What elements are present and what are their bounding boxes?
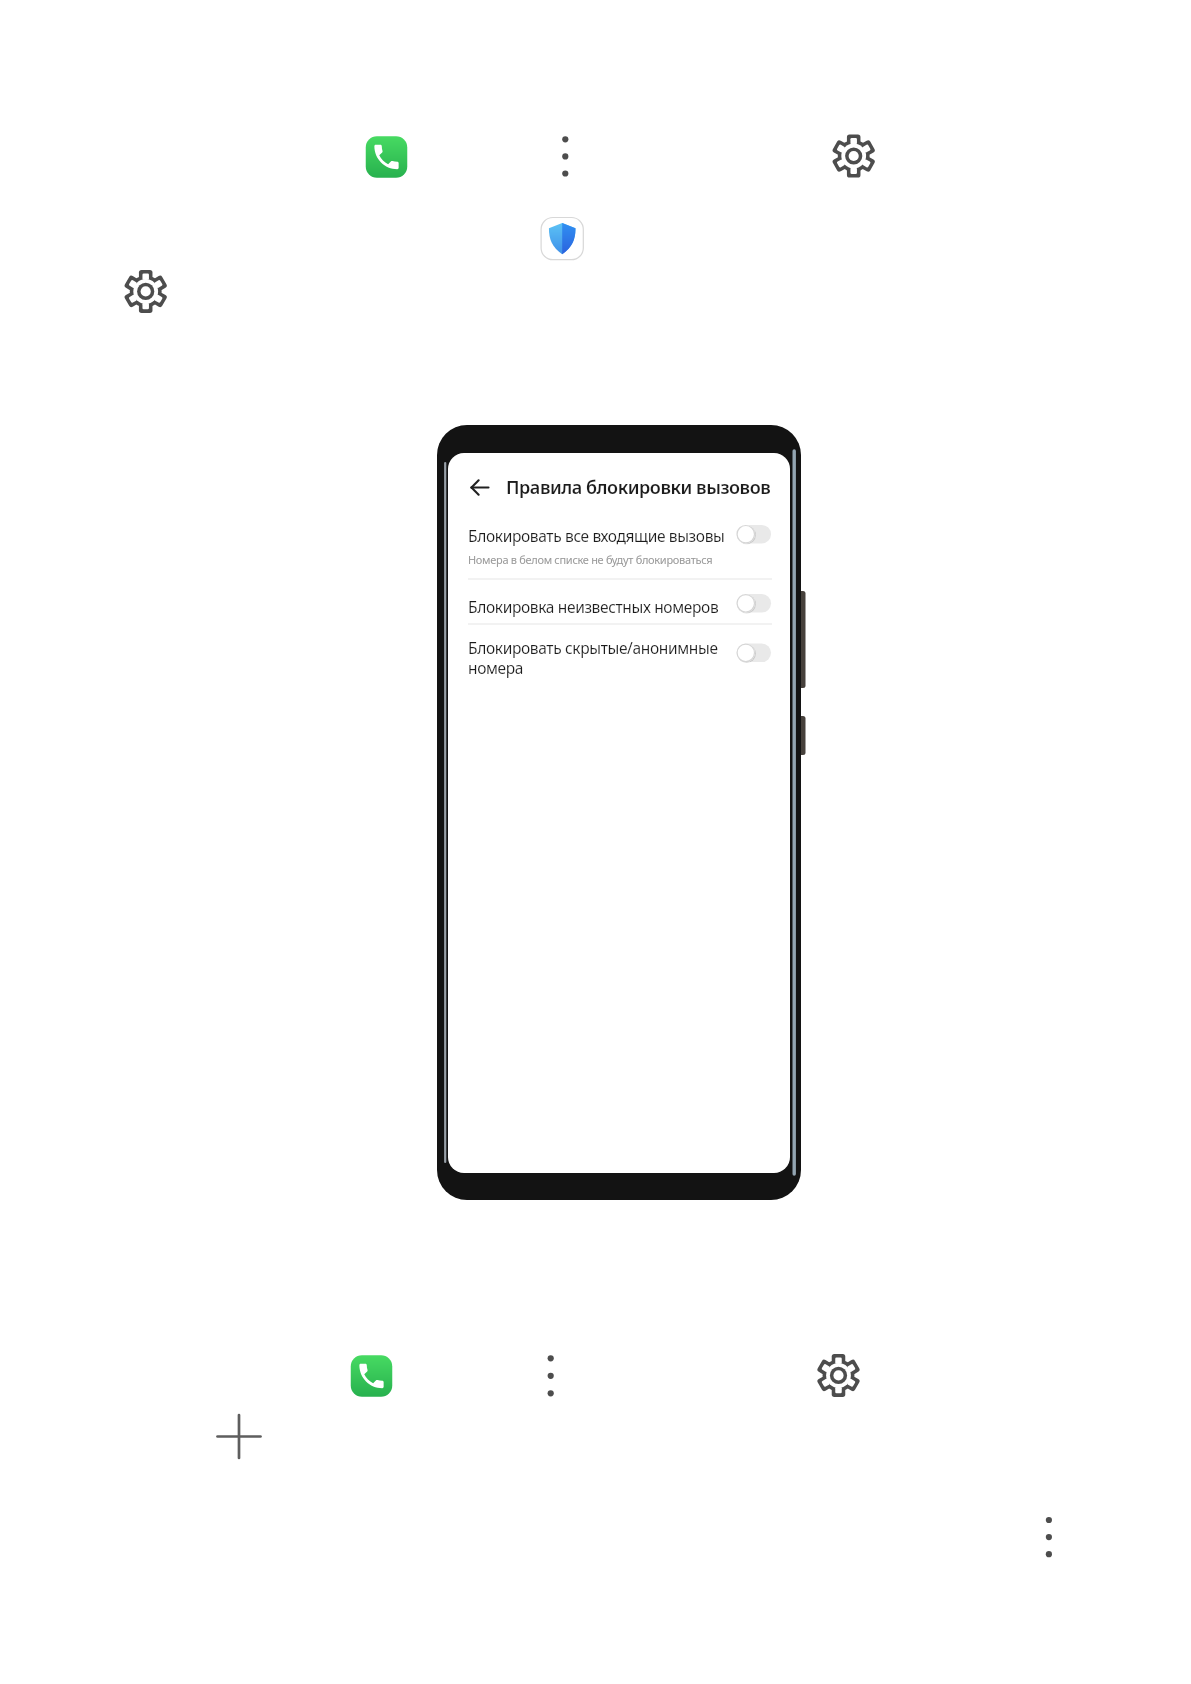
button[interactable] bbox=[460, 586, 780, 622]
button[interactable] bbox=[460, 515, 780, 575]
button[interactable] bbox=[1028, 1499, 1070, 1541]
button[interactable] bbox=[817, 1354, 861, 1398]
staticText: Правила блокировки вызовов bbox=[506, 475, 771, 500]
button[interactable] bbox=[460, 630, 780, 674]
button[interactable] bbox=[462, 470, 498, 506]
button[interactable] bbox=[530, 1348, 572, 1390]
button[interactable] bbox=[832, 134, 876, 178]
button[interactable] bbox=[365, 136, 408, 179]
button[interactable] bbox=[544, 128, 586, 170]
staticText: Блокировать все входящие вызовы bbox=[468, 525, 725, 546]
staticText: Блокировать скрытые/анонимные номера bbox=[468, 637, 718, 679]
button[interactable] bbox=[215, 1413, 263, 1461]
button[interactable] bbox=[541, 217, 584, 260]
staticText: Блокировка неизвестных номеров bbox=[468, 596, 719, 617]
staticText: Номера в белом списке не будут блокирова… bbox=[468, 552, 713, 567]
button[interactable] bbox=[124, 270, 168, 314]
button[interactable] bbox=[350, 1355, 393, 1398]
